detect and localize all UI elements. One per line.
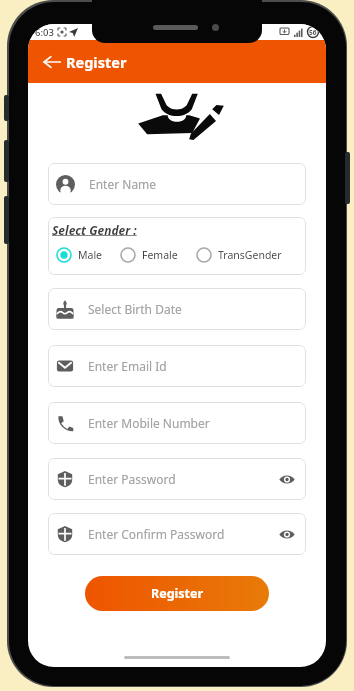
staticText: Register xyxy=(151,585,204,602)
staticText: Female xyxy=(142,248,178,262)
staticText: Select Gender : xyxy=(52,222,137,238)
button[interactable]: Enter Password xyxy=(48,458,306,500)
staticText: 56 xyxy=(309,28,317,37)
button[interactable]: Enter Name xyxy=(48,163,306,205)
staticText: Enter Name xyxy=(89,176,157,192)
staticText: Register xyxy=(66,52,127,72)
staticText: 6:03 xyxy=(35,26,54,39)
button[interactable]: Show password xyxy=(276,468,298,490)
button[interactable]: Female xyxy=(120,247,178,263)
staticText: Enter Confirm Password xyxy=(88,526,225,542)
staticText: Male xyxy=(78,248,103,262)
button[interactable]: Male xyxy=(56,247,103,263)
button[interactable]: Enter Confirm Password xyxy=(48,513,306,555)
button[interactable]: Back xyxy=(40,50,64,74)
staticText: Enter Password xyxy=(88,471,176,487)
staticText: Select Birth Date xyxy=(88,301,182,317)
button[interactable]: Show password xyxy=(276,523,298,545)
staticText: TransGender xyxy=(218,248,282,262)
staticText: Enter Mobile Number xyxy=(88,415,210,431)
staticText: Enter Email Id xyxy=(88,358,167,374)
button[interactable]: Enter Email Id xyxy=(48,345,306,387)
button[interactable]: Register xyxy=(85,576,269,611)
button[interactable]: TransGender xyxy=(196,247,282,263)
button[interactable]: Select Birth Date xyxy=(48,288,306,330)
button[interactable]: Enter Mobile Number xyxy=(48,402,306,444)
